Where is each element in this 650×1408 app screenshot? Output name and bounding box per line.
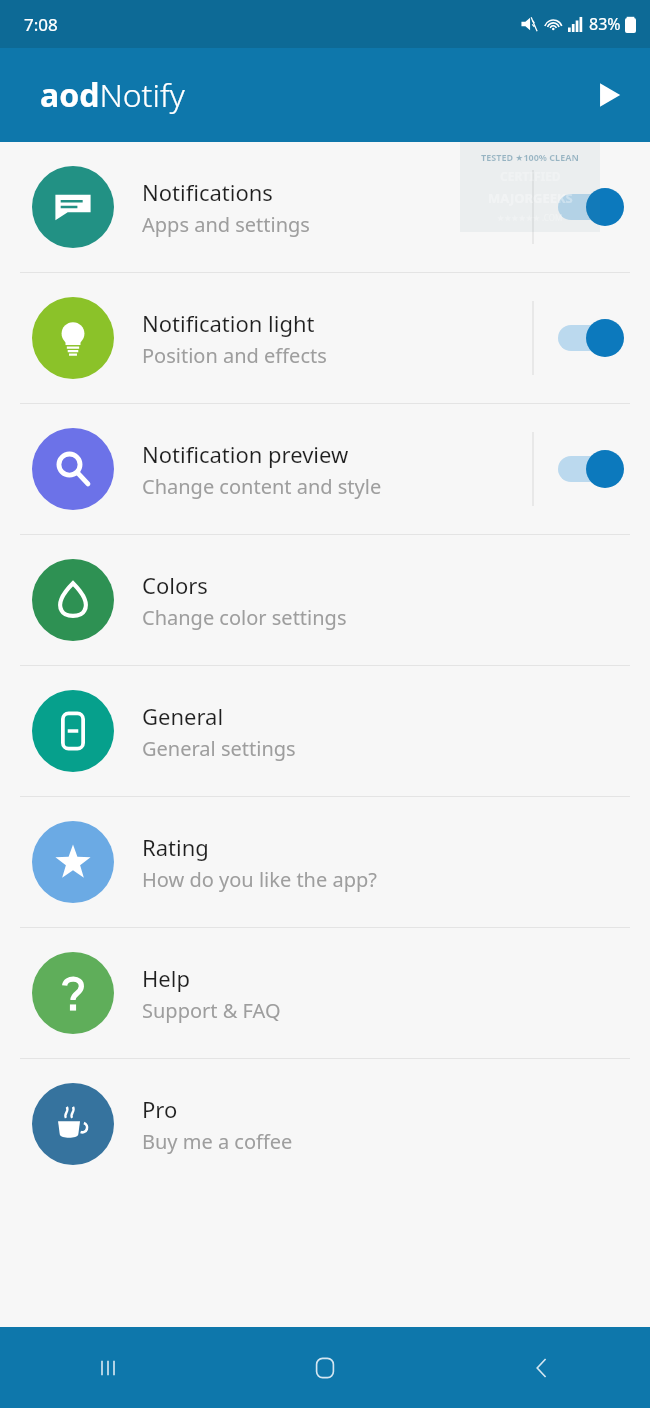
staticText: Position and effects xyxy=(142,342,327,369)
staticText: Change content and style xyxy=(142,473,382,500)
staticText: General settings xyxy=(142,735,296,762)
button[interactable]: Toggle Notification preview xyxy=(556,445,632,493)
button[interactable]: Back xyxy=(433,1327,650,1408)
button[interactable]: General xyxy=(0,666,650,796)
staticText: TESTED ★100% CLEAN xyxy=(481,151,579,163)
staticText: Apps and settings xyxy=(142,211,310,238)
button[interactable]: Toggle Notification light xyxy=(556,314,632,362)
staticText: MAJORGEEKS xyxy=(488,189,573,207)
button[interactable]: Home xyxy=(216,1327,433,1408)
staticText: Support & FAQ xyxy=(142,997,281,1024)
button[interactable]: Notification light xyxy=(0,273,650,403)
button[interactable]: Pro xyxy=(0,1059,650,1189)
button[interactable]: Toggle Notifications xyxy=(556,183,632,231)
staticText: Notifications xyxy=(142,177,273,207)
button[interactable]: Help xyxy=(0,928,650,1058)
button[interactable]: Notifications xyxy=(0,142,650,272)
staticText: ★★★★★★ .COM xyxy=(497,212,563,223)
button[interactable]: Start xyxy=(586,72,632,118)
staticText: Help xyxy=(142,963,190,993)
button[interactable]: Colors xyxy=(0,535,650,665)
staticText: How do you like the app? xyxy=(142,866,377,893)
button[interactable]: Recents xyxy=(0,1327,216,1408)
staticText: 7:08 xyxy=(24,13,58,36)
staticText: 83% xyxy=(589,13,621,35)
staticText: Buy me a coffee xyxy=(142,1128,293,1155)
staticText: Pro xyxy=(142,1094,178,1124)
button[interactable]: Rating xyxy=(0,797,650,927)
staticText: General xyxy=(142,701,224,731)
staticText: Notification light xyxy=(142,308,315,338)
staticText: aodNotify xyxy=(40,73,185,117)
button[interactable]: Notification preview xyxy=(0,404,650,534)
staticText: Colors xyxy=(142,570,208,600)
staticText: Change color settings xyxy=(142,604,347,631)
staticText: CERTIFIED xyxy=(500,168,561,184)
staticText: Notification preview xyxy=(142,439,349,469)
staticText: Rating xyxy=(142,832,209,862)
